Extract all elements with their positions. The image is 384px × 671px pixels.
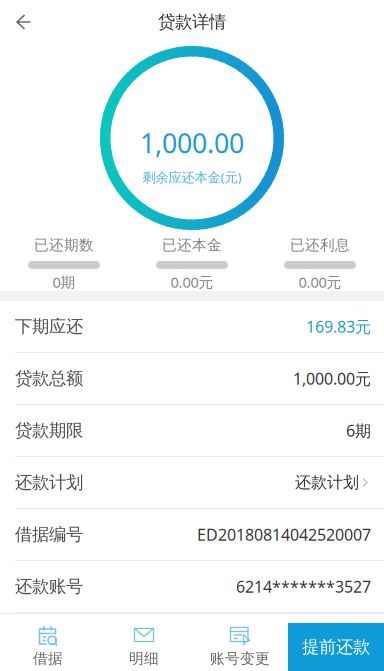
staticText: 借据 (33, 649, 63, 667)
staticText: 贷款总额 (15, 368, 83, 389)
staticText: 0.00元 (298, 272, 341, 292)
button[interactable]: 借据 (0, 614, 96, 671)
button[interactable]: Back (0, 0, 44, 44)
staticText: 0.00元 (170, 272, 213, 292)
button[interactable]: 明细 (96, 614, 192, 671)
staticText: 已还本金 (162, 236, 222, 254)
staticText: 下期应还 (15, 316, 83, 337)
staticText: 还款账号 (15, 576, 83, 597)
staticText: 6214*******3527 (236, 576, 371, 597)
staticText: 169.83元 (306, 316, 371, 337)
staticText: 贷款期限 (15, 420, 83, 441)
button[interactable]: 提前还款 (288, 614, 384, 671)
staticText: 1,000.00 (140, 125, 244, 161)
button[interactable]: 贷款期限 (0, 405, 384, 457)
staticText: 借据编号 (15, 524, 83, 545)
staticText: 已还期数 (34, 236, 94, 254)
staticText: 提前还款 (302, 636, 370, 658)
staticText: 0期 (52, 272, 75, 292)
button[interactable]: 贷款总额 (0, 353, 384, 405)
button[interactable]: 下期应还 (0, 301, 384, 353)
button[interactable]: 还款账号 (0, 561, 384, 613)
staticText: ED20180814042520007 (197, 524, 371, 545)
staticText: 贷款详情 (158, 11, 226, 33)
staticText: 6期 (346, 420, 371, 441)
staticText: 还款计划 (295, 473, 359, 492)
button[interactable]: 借据编号 (0, 509, 384, 561)
button[interactable]: 账号变更 (192, 614, 288, 671)
staticText: 明细 (129, 649, 159, 667)
staticText: 还款计划 (15, 472, 83, 493)
staticText: 1,000.00元 (293, 368, 371, 389)
staticText: 已还利息 (290, 236, 350, 254)
staticText: 账号变更 (210, 649, 270, 667)
button[interactable]: 还款计划 (0, 457, 384, 509)
staticText: 剩余应还本金(元) (142, 168, 241, 186)
